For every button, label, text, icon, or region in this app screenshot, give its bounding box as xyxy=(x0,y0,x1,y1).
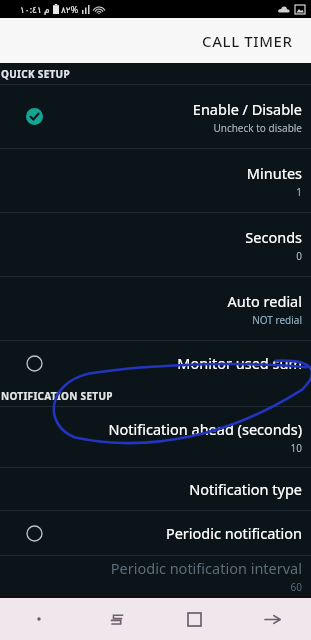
staticText: Auto redial xyxy=(227,291,302,311)
staticText: NOTIFICATION SETUP xyxy=(1,389,113,403)
staticText: 1 xyxy=(296,185,302,199)
staticText: CALL TIMER xyxy=(202,31,293,51)
button[interactable]: Notification type xyxy=(0,468,311,510)
button[interactable]: Auto redial xyxy=(0,277,311,340)
staticText: 10 xyxy=(290,441,302,455)
staticText: Seconds xyxy=(245,227,302,247)
button[interactable]: Enabled checkbox xyxy=(0,85,311,148)
staticText: NOT redial xyxy=(252,313,302,327)
staticText: Monitor used sum xyxy=(177,353,302,373)
staticText: 0 xyxy=(296,249,302,263)
staticText: ٨٢% xyxy=(61,3,79,15)
button[interactable]: Unchecked checkbox xyxy=(0,341,311,385)
button[interactable]: Minutes xyxy=(0,149,311,212)
button[interactable]: Unchecked checkbox xyxy=(0,511,311,555)
button[interactable]: Periodic notification interval xyxy=(0,556,311,596)
staticText: Enable / Disable xyxy=(192,99,302,119)
button[interactable]: Seconds xyxy=(0,213,311,276)
staticText: Periodic notification xyxy=(165,523,302,543)
staticText: Notification ahead (seconds) xyxy=(108,419,302,439)
button[interactable]: Menu xyxy=(0,598,77,640)
staticText: م ١٠:٤١ xyxy=(20,3,50,15)
button[interactable]: Recent apps xyxy=(77,598,155,640)
staticText: Minutes xyxy=(246,163,302,183)
button[interactable]: Home xyxy=(155,598,233,640)
other: Unchecked checkbox xyxy=(26,525,43,542)
button[interactable]: Notification ahead (seconds) xyxy=(0,407,311,467)
staticText: 60 xyxy=(290,580,302,594)
other: Unchecked checkbox xyxy=(26,355,43,372)
staticText: Notification type xyxy=(189,479,302,499)
other: Enabled checkbox xyxy=(26,108,43,125)
staticText: Uncheck to disable xyxy=(213,121,302,135)
button[interactable]: CALL TIMER xyxy=(0,18,311,63)
button[interactable]: Back xyxy=(233,598,311,640)
staticText: Periodic notification interval xyxy=(110,558,302,578)
staticText: QUICK SETUP xyxy=(1,67,70,81)
